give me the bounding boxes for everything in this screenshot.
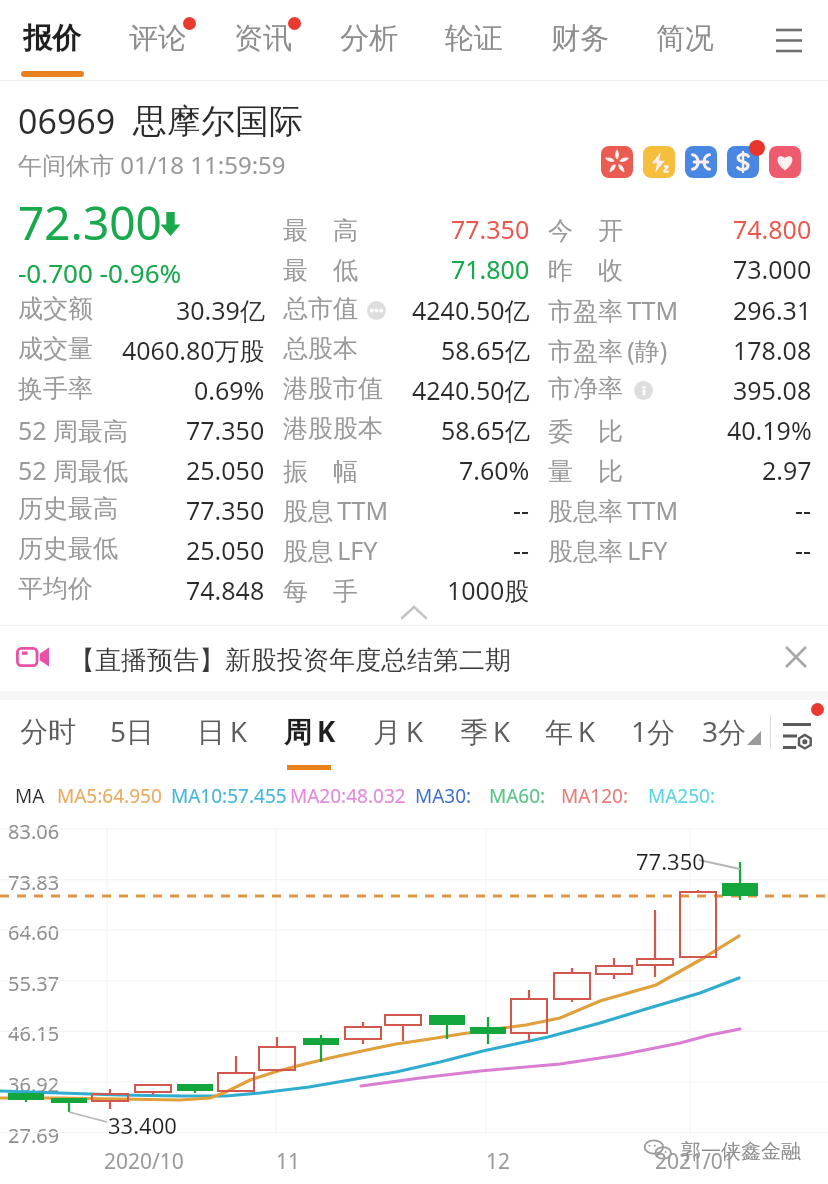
staticText: 报价: [23, 20, 81, 57]
staticText: MA10:57.455: [171, 783, 287, 809]
staticText: 25.050: [186, 533, 265, 567]
staticText: 市盈率 (静): [548, 333, 668, 367]
staticText: 轮证: [445, 20, 503, 57]
button[interactable]: 轮证: [429, 2, 519, 74]
button[interactable]: HK Market: [601, 146, 633, 178]
staticText: 今 开: [548, 212, 623, 246]
staticText: 77.350: [451, 212, 530, 246]
staticText: --: [513, 533, 530, 567]
staticText: 52 周最高: [18, 413, 129, 447]
staticText: 最 高: [283, 212, 358, 246]
staticText: 395.08: [733, 373, 812, 407]
button[interactable]: Info: [634, 381, 653, 400]
staticText: 总市值: [283, 293, 358, 324]
staticText: 股息 LFY: [283, 533, 378, 567]
staticText: 55.37: [8, 970, 60, 997]
staticText: 58.65亿: [441, 413, 530, 447]
staticText: 4060.80万股: [122, 333, 265, 367]
staticText: 股息率 LFY: [548, 533, 668, 567]
staticText: 总股本: [283, 333, 358, 364]
staticText: 4240.50亿: [412, 293, 530, 327]
button[interactable]: 分时: [7, 697, 89, 765]
staticText: MA5:64.950: [57, 783, 162, 809]
staticText: 历史最低: [18, 533, 118, 564]
staticText: 178.08: [733, 333, 812, 367]
staticText: 分时: [20, 714, 76, 749]
staticText: 股息率 TTM: [548, 493, 679, 527]
button[interactable]: Collapse: [374, 600, 454, 624]
staticText: 成交额: [18, 293, 93, 324]
staticText: 06969: [18, 98, 116, 144]
staticText: 25.050: [186, 453, 265, 487]
staticText: 73.000: [733, 252, 812, 286]
staticText: --: [513, 493, 530, 527]
staticText: 评论: [129, 20, 187, 57]
button[interactable]: 【直播预告】新股投资年度总结第二期: [0, 626, 828, 693]
button[interactable]: Menu: [759, 10, 819, 70]
button[interactable]: Indicators: [774, 713, 820, 759]
button[interactable]: 评论: [113, 2, 203, 74]
staticText: 委 比: [548, 413, 623, 447]
staticText: 2.97: [762, 453, 812, 487]
staticText: 月 K: [373, 712, 423, 750]
staticText: 2020/10: [104, 1147, 184, 1176]
staticText: 64.60: [8, 919, 60, 946]
button[interactable]: 1分: [612, 697, 694, 765]
staticText: 午间休市 01/18 11:59:59: [18, 148, 286, 181]
staticText: MA250:: [648, 783, 716, 809]
button[interactable]: Trade: [685, 146, 717, 178]
button[interactable]: 财务: [535, 2, 625, 74]
staticText: 27.69: [8, 1122, 60, 1149]
button[interactable]: Close: [776, 637, 816, 677]
staticText: 量 比: [548, 453, 623, 487]
button[interactable]: 月 K: [357, 697, 439, 765]
staticText: MA120:: [561, 783, 629, 809]
button[interactable]: Level 2: [643, 146, 675, 178]
button[interactable]: 周 K: [269, 697, 351, 765]
staticText: 72.300: [18, 191, 162, 254]
staticText: 5日: [110, 712, 155, 750]
staticText: 市净率: [548, 373, 623, 404]
button[interactable]: More info: [367, 301, 386, 320]
button[interactable]: 资讯: [218, 2, 308, 74]
staticText: 周 K: [284, 712, 336, 750]
staticText: 港股股本: [283, 413, 383, 444]
staticText: 历史最高: [18, 493, 118, 524]
button[interactable]: 5日: [91, 697, 173, 765]
staticText: 年 K: [545, 712, 595, 750]
button[interactable]: 年 K: [529, 697, 611, 765]
staticText: 1分: [631, 712, 676, 750]
button[interactable]: 季 K: [444, 697, 526, 765]
staticText: MA30:: [415, 783, 472, 809]
staticText: 33.400: [108, 1110, 177, 1140]
staticText: 平均价: [18, 573, 93, 604]
staticText: 58.65亿: [441, 333, 530, 367]
staticText: 股息 TTM: [283, 493, 389, 527]
button[interactable]: 3分: [690, 697, 772, 765]
button[interactable]: Currency: [727, 146, 759, 178]
staticText: 资讯: [234, 20, 292, 57]
button[interactable]: Favorite: [769, 146, 801, 178]
staticText: 分析: [340, 20, 398, 57]
staticText: MA60:: [489, 783, 546, 809]
staticText: 30.39亿: [176, 293, 265, 327]
staticText: MA: [15, 783, 45, 809]
button[interactable]: 分析: [324, 2, 414, 74]
staticText: MA20:48.032: [290, 783, 406, 809]
staticText: 74.848: [186, 573, 265, 607]
button[interactable]: 日 K: [181, 697, 263, 765]
staticText: 【直播预告】新股投资年度总结第二期: [69, 644, 511, 677]
staticText: 财务: [551, 20, 609, 57]
staticText: 36.92: [8, 1071, 60, 1098]
staticText: 换手率: [18, 373, 93, 404]
staticText: 2021/01: [655, 1147, 735, 1176]
button[interactable]: 简况: [640, 2, 730, 74]
staticText: 40.19%: [727, 413, 812, 447]
staticText: 46.15: [8, 1020, 60, 1047]
staticText: 77.350: [186, 413, 265, 447]
button[interactable]: 报价: [7, 2, 97, 74]
staticText: 3分: [702, 712, 747, 750]
staticText: 振 幅: [283, 453, 358, 487]
staticText: 郭一侠鑫金融: [681, 1139, 801, 1164]
staticText: 296.31: [733, 293, 812, 327]
